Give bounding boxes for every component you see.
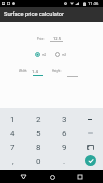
staticText: 5 xyxy=(36,129,41,138)
staticText: 3 xyxy=(62,115,67,124)
button[interactable]: Recents xyxy=(74,171,86,183)
staticText: Surface price calculator xyxy=(4,11,64,18)
staticText: 11:36 xyxy=(88,1,99,6)
staticText: 1.4 xyxy=(32,69,38,74)
button[interactable]: m2 xyxy=(35,52,47,57)
staticText: 0 xyxy=(36,157,41,166)
staticText: 9 xyxy=(62,143,67,152)
staticText: 4 xyxy=(10,129,15,138)
button[interactable]: Home xyxy=(46,171,58,183)
button[interactable]: m3 xyxy=(55,52,67,57)
staticText: Width: xyxy=(19,69,28,72)
button[interactable]: 8 xyxy=(25,140,51,154)
button[interactable]: 1 xyxy=(0,112,25,126)
staticText: . xyxy=(63,157,66,166)
staticText: Height : xyxy=(52,69,62,72)
staticText: m3 xyxy=(62,53,67,56)
staticText: 8 xyxy=(36,143,41,152)
button[interactable]: Back xyxy=(17,171,29,183)
button[interactable]: Space xyxy=(77,126,103,140)
staticText: 12.5 xyxy=(53,36,62,41)
button[interactable]: , xyxy=(0,154,25,168)
button[interactable]: 2 xyxy=(25,112,51,126)
staticText: Price : xyxy=(37,37,45,40)
button[interactable]: Surface price calculator xyxy=(0,7,103,22)
button[interactable]: 5 xyxy=(25,126,51,140)
staticText: 2 xyxy=(36,115,41,124)
button[interactable]: 7 xyxy=(0,140,25,154)
staticText: 6 xyxy=(62,129,67,138)
staticText: 1 xyxy=(10,115,15,124)
staticText: , xyxy=(12,157,14,166)
button[interactable]: 0 xyxy=(25,154,51,168)
button[interactable]: 9 xyxy=(51,140,77,154)
button[interactable]: Backspace xyxy=(77,140,103,154)
other: Space xyxy=(88,132,93,134)
other: Backspace xyxy=(87,145,94,150)
button[interactable]: 6 xyxy=(51,126,77,140)
staticText: 7 xyxy=(10,143,15,152)
other: Enter xyxy=(85,155,96,166)
staticText: m2 xyxy=(42,53,47,56)
button[interactable]: Enter xyxy=(77,154,103,168)
button[interactable]: 3 xyxy=(51,112,77,126)
button[interactable]: 4 xyxy=(0,126,25,140)
button[interactable]: Minus xyxy=(77,112,103,126)
